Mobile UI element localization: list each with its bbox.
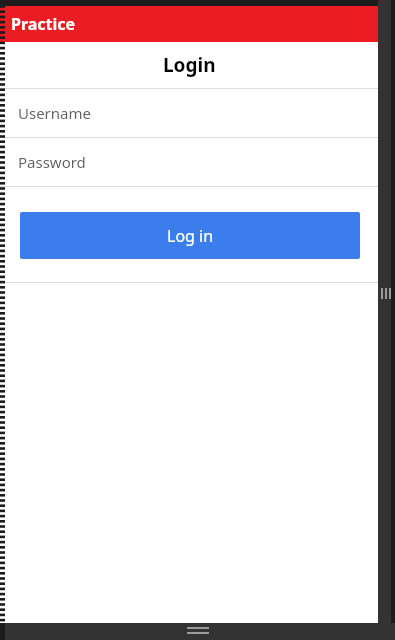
button[interactable]: Vertical scrollbar (378, 0, 395, 640)
staticText: Login (163, 52, 216, 78)
staticText: Password (18, 152, 86, 172)
button[interactable]: Log in (20, 212, 360, 259)
button[interactable]: Password (0, 138, 378, 186)
button[interactable]: Horizontal scrollbar (0, 623, 395, 640)
staticText: Username (18, 103, 91, 123)
button[interactable]: Username (0, 89, 378, 137)
staticText: Log in (167, 225, 214, 247)
staticText: Practice (11, 13, 76, 35)
